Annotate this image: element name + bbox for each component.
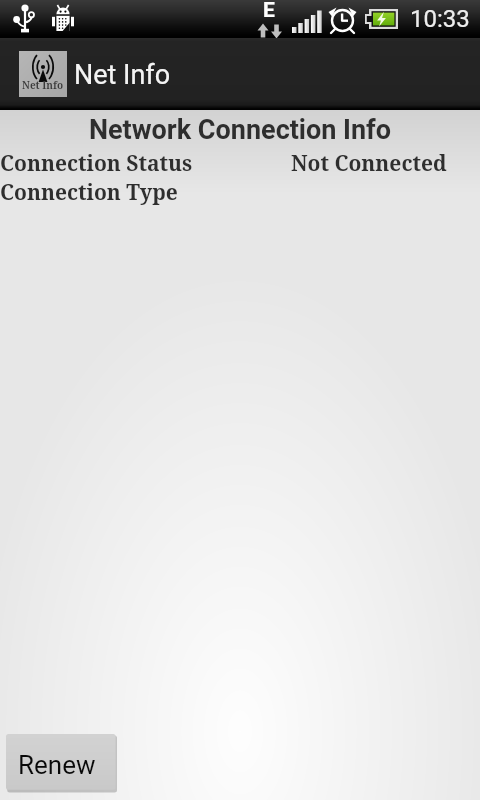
staticText: Renew	[18, 750, 96, 780]
button[interactable]: Net Info app title bar	[0, 38, 480, 110]
staticText: Not Connected	[291, 149, 447, 178]
staticText: Network Connection Info	[0, 114, 480, 146]
staticText: Connection Type	[0, 178, 178, 207]
staticText: 10:33	[410, 5, 470, 33]
other: Status bar	[0, 0, 480, 38]
staticText: Net Info	[22, 78, 64, 92]
staticText: E	[263, 0, 275, 23]
button[interactable]: Renew	[6, 734, 117, 792]
staticText: Net Info	[74, 59, 171, 91]
other: Net Info icon	[19, 51, 67, 97]
staticText: Connection Status	[0, 149, 193, 178]
